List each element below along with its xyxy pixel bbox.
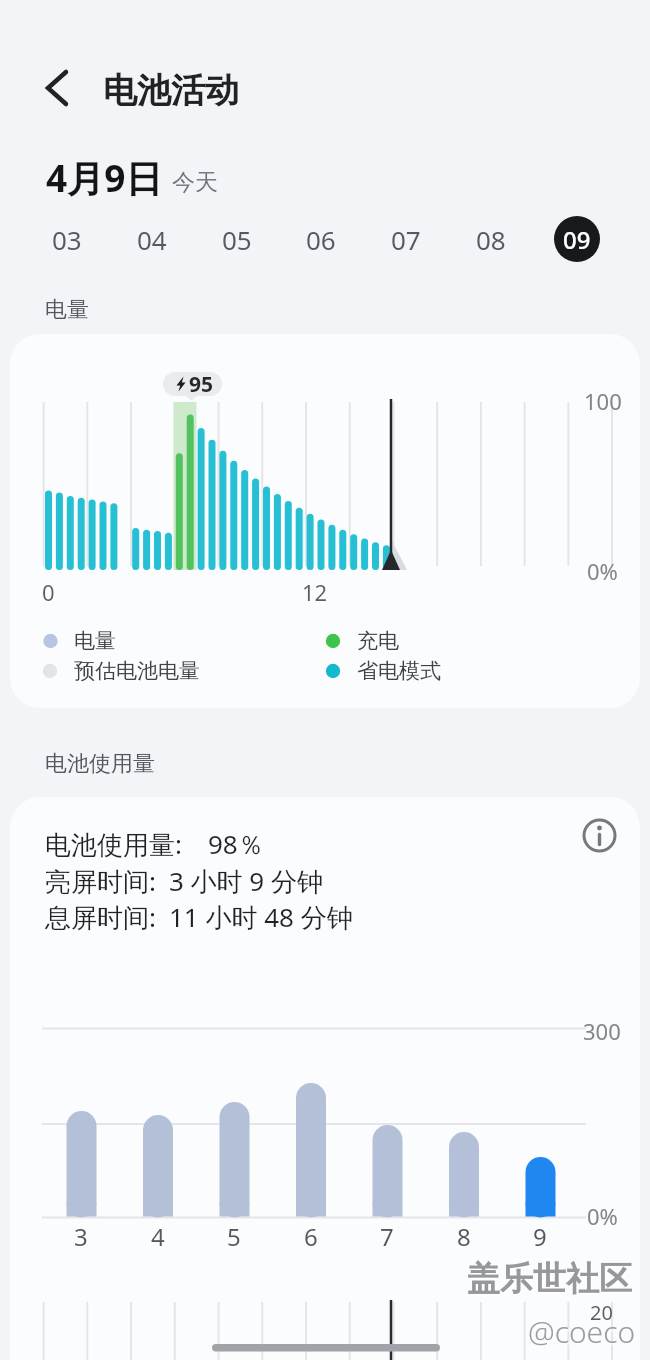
staticText: 0 <box>42 577 55 607</box>
button[interactable]: 08 <box>461 209 521 269</box>
staticText: 预估电池电量 <box>74 658 200 684</box>
button[interactable]: 03 <box>37 209 97 269</box>
staticText: @coeco <box>528 1311 636 1352</box>
staticText: 盖乐世社区 <box>467 1258 632 1300</box>
staticText: 今天 <box>172 168 218 197</box>
staticText: 20 <box>590 1299 613 1326</box>
staticText: 09 <box>563 223 591 256</box>
button[interactable]: 09 <box>554 216 600 262</box>
staticText: 0% <box>587 1201 618 1231</box>
button[interactable] <box>578 814 622 858</box>
staticText: 95 <box>189 370 214 399</box>
staticText: 5 <box>227 1220 241 1253</box>
staticText: 省电模式 <box>357 658 441 684</box>
staticText: 04 <box>137 222 167 257</box>
staticText: 电池使用量: 98％ <box>45 826 264 862</box>
staticText: 9 <box>533 1220 547 1253</box>
staticText: 12 <box>302 577 328 607</box>
button[interactable] <box>34 60 90 116</box>
staticText: 06 <box>306 222 336 257</box>
staticText: 100 <box>584 386 622 416</box>
button[interactable] <box>10 797 640 1360</box>
button[interactable]: 04 <box>122 209 182 269</box>
button[interactable]: 05 <box>207 209 267 269</box>
staticText: 电池活动 <box>103 69 239 112</box>
staticText: 电池使用量 <box>45 750 155 778</box>
button[interactable]: 06 <box>291 209 351 269</box>
staticText: 电量 <box>45 296 89 324</box>
staticText: 05 <box>222 222 252 257</box>
staticText: 电量 <box>74 628 116 654</box>
button[interactable]: 07 <box>376 209 436 269</box>
staticText: 4 <box>151 1220 165 1253</box>
staticText: 4月9日 <box>46 152 163 203</box>
staticText: 0% <box>587 556 618 586</box>
staticText: 7 <box>380 1220 394 1253</box>
staticText: 300 <box>583 1016 621 1046</box>
staticText: 6 <box>304 1220 318 1253</box>
staticText: 亮屏时间: 3 小时 9 分钟 <box>45 863 323 899</box>
staticText: 08 <box>476 222 506 257</box>
staticText: 息屏时间: 11 小时 48 分钟 <box>45 899 353 935</box>
staticText: 07 <box>391 222 421 257</box>
staticText: 8 <box>457 1220 471 1253</box>
staticText: 03 <box>52 222 82 257</box>
staticText: 充电 <box>357 628 399 654</box>
staticText: 3 <box>74 1220 88 1253</box>
